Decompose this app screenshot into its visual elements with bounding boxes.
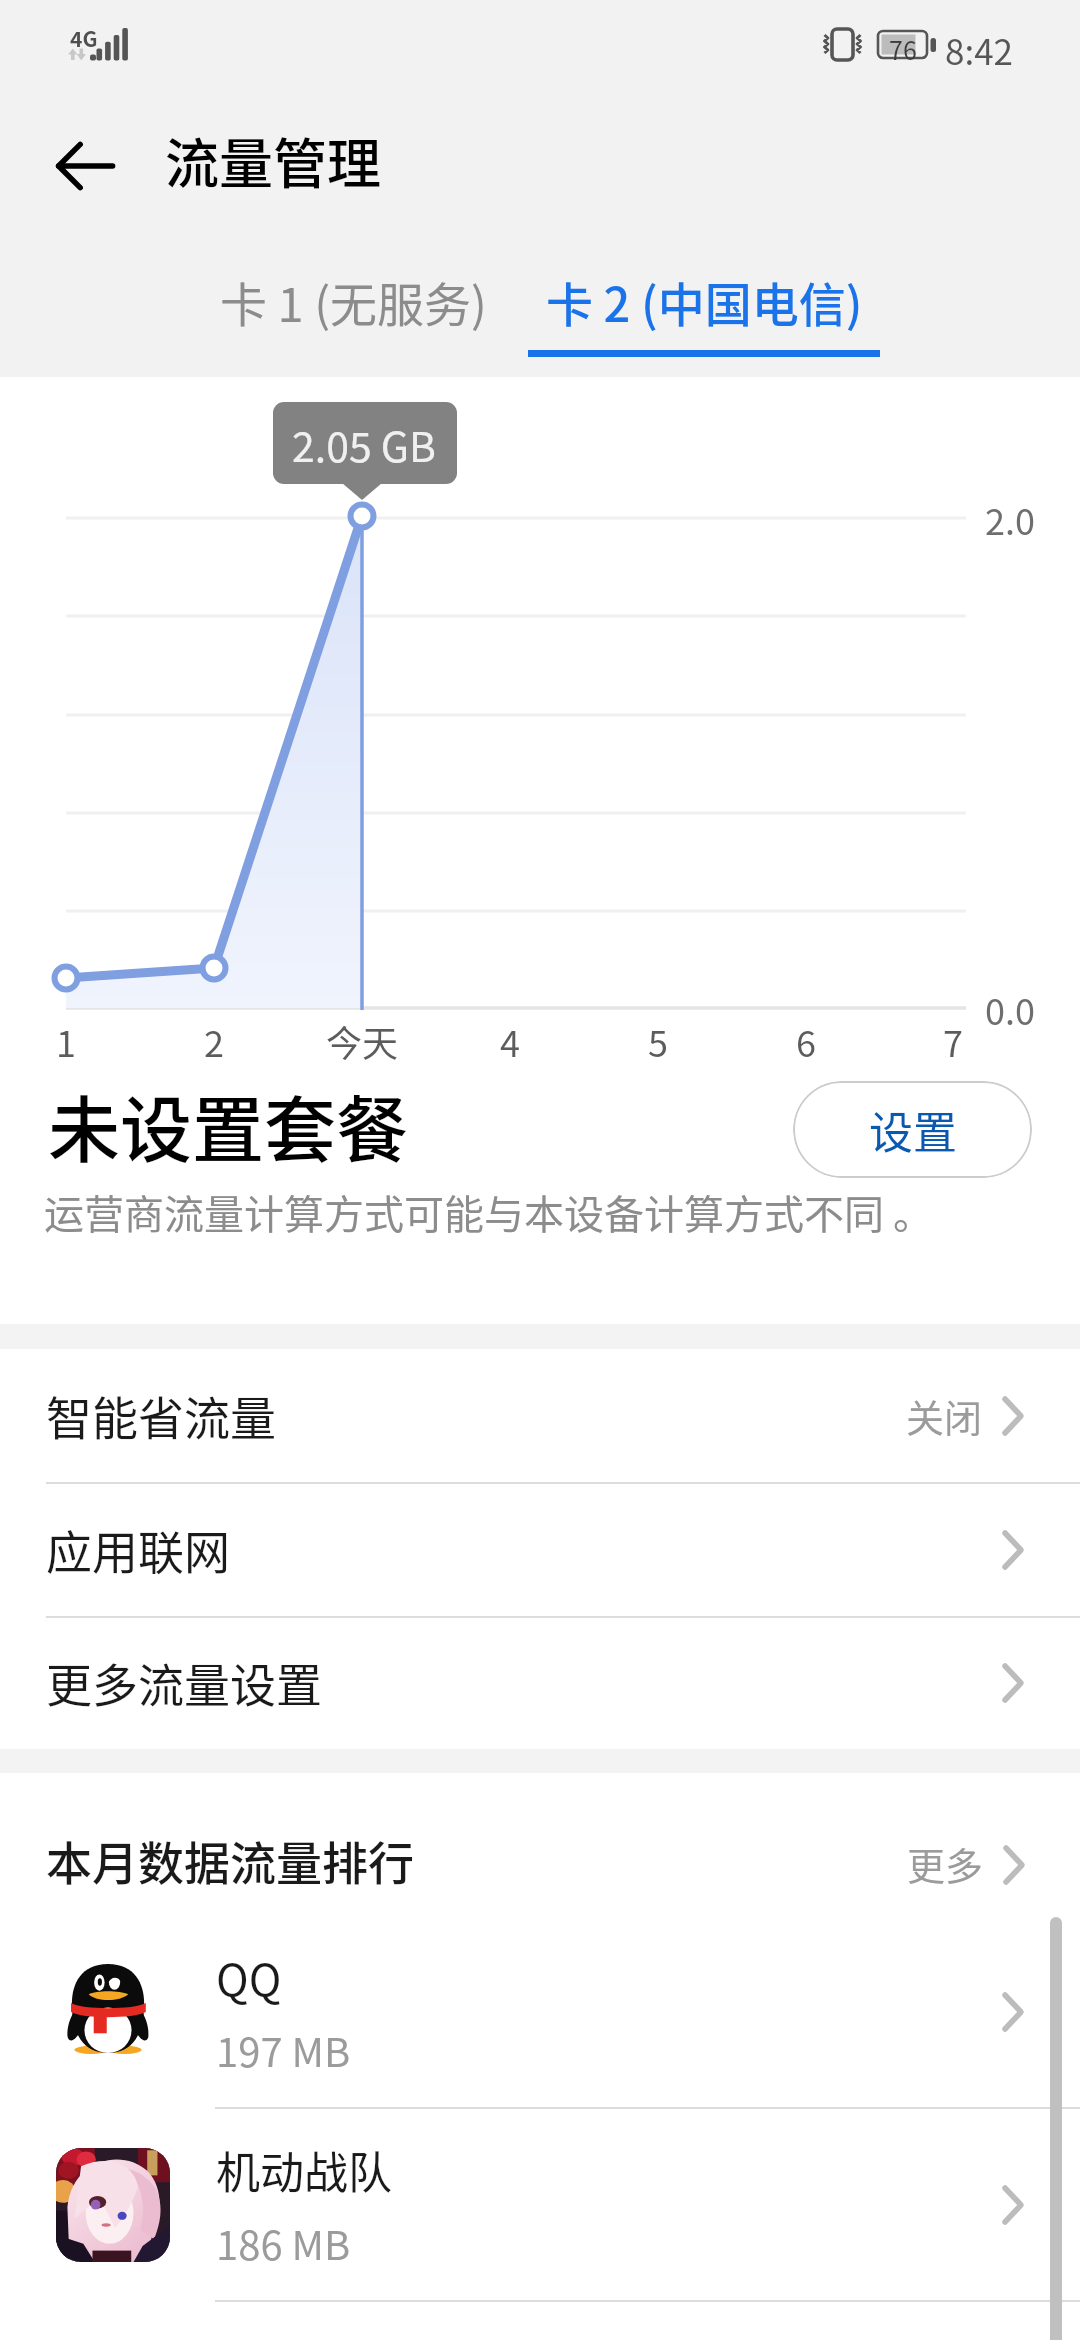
staticText: QQ — [216, 1945, 282, 2009]
button[interactable]: 智能省流量 — [0, 1349, 1080, 1482]
staticText: 卡 1 (无服务) — [220, 267, 487, 335]
staticText: 智能省流量 — [46, 1382, 276, 1449]
staticText: 关闭 — [906, 1388, 983, 1443]
staticText: 未设置套餐 — [48, 1072, 409, 1176]
button[interactable]: 设置 — [793, 1081, 1032, 1178]
button[interactable]: Back — [31, 112, 139, 220]
staticText: 2.05 GB — [272, 414, 456, 473]
staticText: 1 — [6, 1015, 126, 1067]
button[interactable]: 机动战队 — [0, 2108, 1080, 2301]
staticText: 应用联网 — [46, 1516, 230, 1583]
staticText: 运营商流量计算方式可能与本设备计算方式不同 。 — [44, 1183, 933, 1241]
staticText: 更多流量设置 — [46, 1649, 322, 1716]
button[interactable]: 卡 1 (无服务) — [178, 252, 528, 350]
staticText: 7 — [893, 1015, 1013, 1067]
staticText: 76 — [889, 31, 917, 67]
staticText: 机动战队 — [216, 2138, 392, 2202]
button[interactable]: 更多流量设置 — [0, 1616, 1080, 1749]
staticText: 更多 — [907, 1836, 984, 1891]
staticText: 今天 — [302, 1015, 422, 1067]
staticText: 本月数据流量排行 — [46, 1827, 414, 1894]
staticText: 2 — [154, 1015, 274, 1067]
button[interactable]: 应用联网 — [0, 1483, 1080, 1616]
button[interactable]: 本月数据流量排行 — [0, 1773, 1080, 1915]
staticText: 6 — [746, 1015, 866, 1067]
staticText: 流量管理 — [165, 121, 381, 199]
staticText: 5 — [598, 1015, 718, 1067]
staticText: 0.0 — [985, 983, 1035, 1035]
staticText: 卡 2 (中国电信) — [546, 267, 863, 335]
staticText: 8:42 — [945, 24, 1014, 75]
staticText: 2.0 — [985, 493, 1035, 545]
staticText: 4G — [70, 23, 98, 53]
button[interactable]: QQ — [0, 1915, 1080, 2108]
button[interactable]: 卡 2 (中国电信) — [528, 252, 880, 350]
staticText: 设置 — [869, 1098, 957, 1162]
staticText: 186 MB — [216, 2214, 351, 2272]
staticText: 197 MB — [216, 2021, 351, 2079]
staticText: 4 — [450, 1015, 570, 1067]
